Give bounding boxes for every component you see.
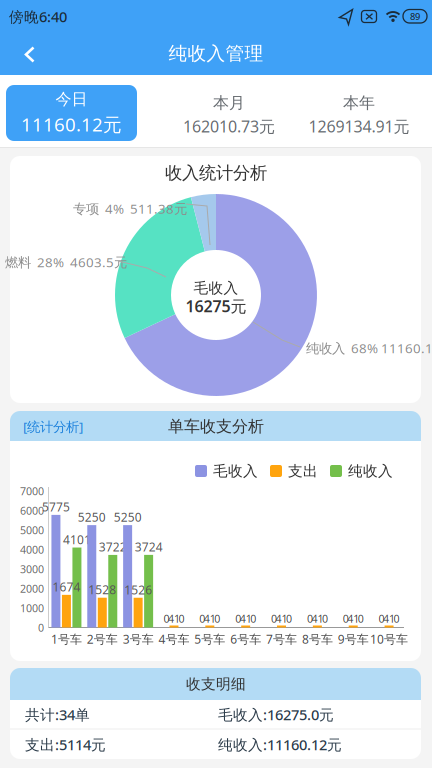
staticText: 0 [38, 620, 44, 635]
staticText: 支出:5114元 [25, 735, 106, 754]
staticText: 1000 [20, 601, 44, 615]
staticText: 3号车 [123, 631, 154, 647]
staticText: 毛收入:16275.0元 [218, 705, 334, 724]
staticText: 9号车 [338, 631, 369, 647]
staticText: 专项 4% 511.38元 [73, 200, 187, 217]
staticText: 1269134.91元 [308, 116, 409, 137]
staticText: 89 [410, 10, 420, 22]
staticText: 41 [204, 611, 216, 626]
staticText: 4号车 [158, 631, 189, 647]
staticText: 本月 [213, 93, 245, 113]
button[interactable]: 今日 [6, 85, 137, 141]
staticText: 傍晚6:40 [9, 7, 67, 26]
staticText: 纯收入:11160.12元 [218, 735, 342, 754]
staticText: 纯收入管理 [168, 42, 263, 65]
staticText: 4000 [20, 542, 44, 557]
staticText: 3724 [135, 539, 163, 555]
button[interactable]: 返回 [8, 32, 52, 76]
staticText: 41 [383, 611, 395, 626]
button[interactable]: 本年 [286, 85, 431, 145]
staticText: 0 [322, 611, 328, 626]
staticText: 1528 [88, 582, 116, 598]
staticText: 收支明细 [186, 675, 246, 693]
staticText: 162010.73元 [183, 116, 275, 137]
staticText: 41 [168, 611, 180, 626]
staticText: 收入统计分析 [165, 162, 267, 184]
staticText: 0 [343, 611, 349, 626]
staticText: 5000 [20, 523, 44, 537]
staticText: 41 [347, 611, 359, 626]
staticText: 2000 [20, 581, 44, 596]
staticText: 41 [275, 611, 287, 626]
staticText: 2号车 [87, 631, 118, 647]
staticText: 5250 [78, 509, 106, 525]
staticText: 毛收入 [193, 279, 238, 297]
staticText: 0 [394, 611, 400, 626]
staticText: 燃料 28% 4603.5元 [5, 253, 127, 271]
staticText: 7000 [20, 484, 44, 498]
staticText: 0 [379, 611, 385, 626]
staticText: 单车收支分析 [168, 417, 264, 436]
staticText: 0 [271, 611, 277, 626]
staticText: 毛收入 [213, 462, 258, 480]
staticText: 0 [286, 611, 292, 626]
staticText: 0 [358, 611, 364, 626]
staticText: 5250 [114, 509, 142, 525]
staticText: 41 [240, 611, 252, 626]
staticText: 6号车 [230, 631, 261, 647]
staticText: 本年 [343, 93, 375, 113]
staticText: 支出 [288, 462, 318, 480]
staticText: 41 [311, 611, 323, 626]
staticText: 8号车 [302, 631, 333, 647]
staticText: 0 [178, 611, 184, 626]
button[interactable]: 本月 [159, 85, 299, 145]
staticText: 纯收入 68% 11160.1 [306, 339, 432, 357]
staticText: 0 [214, 611, 220, 626]
staticText: 1674 [52, 579, 80, 595]
staticText: 1526 [124, 582, 152, 598]
staticText: 3722 [99, 539, 127, 555]
staticText: 10号车 [370, 631, 408, 647]
staticText: 1号车 [51, 631, 82, 647]
staticText: 今日 [55, 89, 87, 109]
staticText: 0 [235, 611, 241, 626]
staticText: 0 [163, 611, 169, 626]
staticText: 纯收入 [348, 462, 393, 480]
staticText: 6000 [20, 503, 44, 518]
staticText: 7号车 [266, 631, 297, 647]
staticText: 4101 [63, 532, 91, 547]
staticText: 共计:34单 [25, 705, 90, 724]
staticText: [统计分析] [23, 418, 83, 435]
staticText: 0 [307, 611, 313, 626]
staticText: 0 [199, 611, 205, 626]
staticText: 11160.12元 [21, 112, 122, 137]
staticText: 3000 [20, 562, 44, 576]
staticText: 16275元 [185, 295, 246, 317]
staticText: 5775 [42, 499, 70, 515]
staticText: 5号车 [194, 631, 225, 647]
staticText: 0 [250, 611, 256, 626]
